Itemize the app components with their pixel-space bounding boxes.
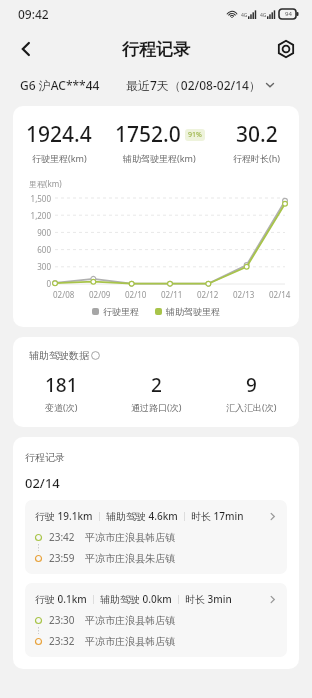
staticText: 汇入汇出(次)	[226, 401, 277, 413]
staticText: 辅助驾驶数据	[29, 349, 89, 362]
staticText: 辅助驾驶里程	[166, 306, 220, 317]
button[interactable]: G6 沪AC***44	[20, 77, 100, 93]
staticText: 行驶里程(km)	[32, 152, 87, 164]
button[interactable]: 最近7天（02/08-02/14）	[126, 77, 275, 93]
staticText: 变道(次)	[45, 401, 78, 413]
staticText: 4G	[260, 12, 267, 19]
staticText: 辅助驾驶 0.0km	[100, 592, 172, 606]
staticText: 02/12	[197, 289, 219, 300]
staticText: 1924.4	[26, 120, 92, 149]
staticText: 02/10	[125, 289, 147, 300]
staticText: 行程时长(h)	[233, 152, 280, 164]
staticText: 行驶里程	[103, 306, 139, 317]
staticText: 平凉市庄浪县韩店镇	[85, 531, 175, 544]
staticText: 30.2	[236, 120, 278, 149]
staticText: 辅助驾驶 4.6km	[106, 509, 178, 523]
staticText: 23:59	[49, 551, 75, 565]
staticText: 2	[151, 372, 162, 398]
staticText: 23:42	[49, 530, 75, 544]
staticText: 平凉市庄浪县韩店镇	[85, 635, 175, 648]
button[interactable]: 行驶 0.1km	[25, 583, 287, 657]
staticText: 02/08	[53, 289, 75, 300]
button[interactable]: Settings	[266, 29, 306, 69]
staticText: 600	[37, 244, 51, 255]
staticText: 9	[246, 372, 257, 398]
staticText: 181	[45, 372, 78, 398]
staticText: 1,500	[30, 193, 51, 204]
staticText: 02/14	[269, 289, 291, 300]
staticText: 1752.0	[115, 120, 181, 149]
staticText: 94	[285, 10, 292, 18]
staticText: 300	[37, 261, 51, 272]
staticText: 行驶 0.1km	[35, 592, 87, 606]
staticText: 里程(km)	[29, 178, 62, 189]
staticText: 行驶 19.1km	[35, 509, 93, 523]
staticText: 行程记录	[25, 451, 65, 464]
staticText: 行程记录	[122, 39, 190, 60]
staticText: 1,200	[30, 210, 51, 221]
staticText: 02/13	[233, 289, 255, 300]
staticText: 时长 3min	[185, 592, 232, 606]
staticText: 平凉市庄浪县朱店镇	[85, 552, 175, 565]
staticText: 91%	[188, 130, 202, 140]
staticText: 4G	[241, 12, 248, 19]
staticText: 02/09	[89, 289, 111, 300]
staticText: 辅助驾驶里程(km)	[123, 152, 196, 164]
staticText: 通过路口(次)	[131, 401, 182, 413]
staticText: G6 沪AC***44	[20, 77, 100, 93]
staticText: 02/11	[161, 289, 183, 300]
staticText: 23:30	[49, 613, 75, 627]
button[interactable]: 辅助驾驶数据	[29, 349, 100, 362]
staticText: 最近7天（02/08-02/14）	[126, 77, 261, 93]
staticText: 23:32	[49, 634, 75, 648]
staticText: 时长 17min	[191, 509, 244, 523]
staticText: 900	[37, 227, 51, 238]
staticText: 02/14	[25, 474, 60, 492]
staticText: 09:42	[18, 6, 49, 22]
button[interactable]: 行驶 19.1km	[25, 500, 287, 574]
staticText: 0	[46, 278, 51, 289]
button[interactable]: Back	[6, 29, 46, 69]
staticText: 平凉市庄浪县韩店镇	[85, 614, 175, 627]
